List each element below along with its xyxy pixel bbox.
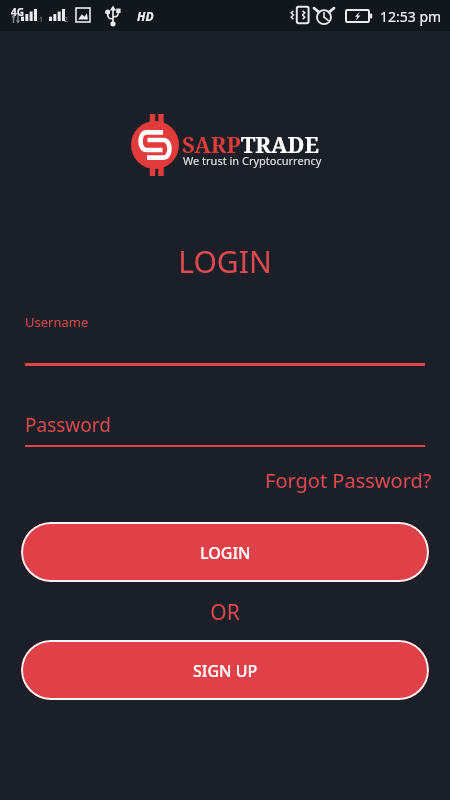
staticText: SARP — [182, 129, 241, 159]
button[interactable]: LOGIN — [21, 522, 429, 582]
staticText: 12:53 pm — [380, 7, 442, 26]
staticText: We trust in Cryptocurrency — [183, 153, 322, 168]
staticText: 4G — [11, 5, 24, 19]
staticText: 1 — [39, 15, 44, 25]
staticText: LOGIN — [0, 241, 450, 282]
staticText: Password — [25, 412, 111, 438]
staticText: TRADE — [241, 129, 319, 159]
staticText: HD — [137, 8, 154, 24]
staticText: 2 — [64, 15, 69, 25]
button[interactable]: Forgot Password? — [261, 464, 436, 497]
other: SarpTrade logo — [128, 112, 182, 178]
staticText: OR — [0, 598, 450, 627]
button[interactable]: SIGN UP — [21, 640, 429, 700]
staticText: SIGN UP — [193, 660, 258, 682]
button[interactable]: Password — [25, 408, 425, 447]
staticText: LOGIN — [200, 542, 251, 564]
staticText: Username — [25, 313, 89, 331]
button[interactable]: Username — [25, 308, 425, 366]
